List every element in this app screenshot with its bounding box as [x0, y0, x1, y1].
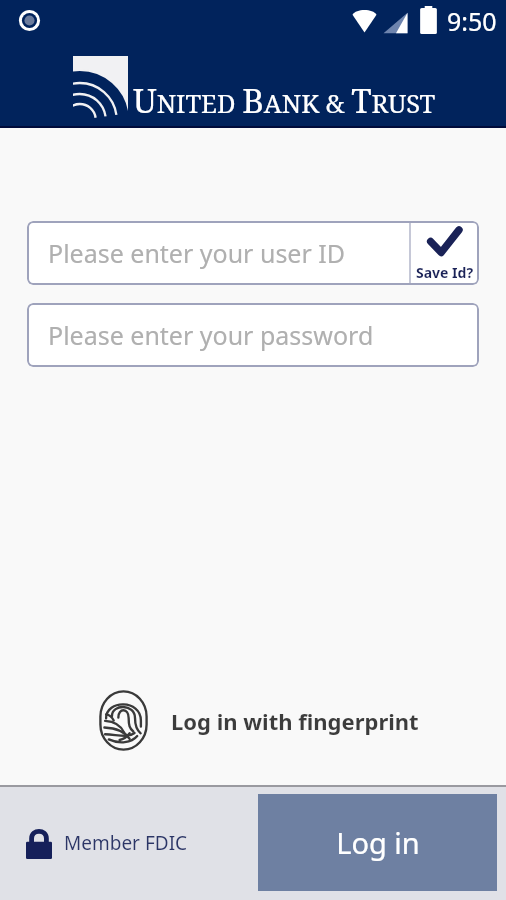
- button[interactable]: Please enter your password: [27, 303, 479, 367]
- staticText: Please enter your user ID: [48, 236, 410, 270]
- staticText: Log in with fingerprint: [171, 706, 419, 736]
- staticText: Please enter your password: [48, 318, 374, 352]
- staticText: UNITED BANK & TRUST: [133, 78, 436, 123]
- button[interactable]: Member FDIC: [26, 827, 188, 859]
- button[interactable]: Save Id: [410, 221, 479, 285]
- staticText: Member FDIC: [64, 830, 188, 856]
- staticText: Log in: [336, 823, 420, 862]
- button[interactable]: Please enter your user ID: [27, 221, 479, 285]
- button[interactable]: Log in with fingerprint: [99, 690, 419, 751]
- button[interactable]: Log in: [258, 794, 497, 891]
- staticText: 9:50: [447, 4, 497, 38]
- staticText: Save Id?: [416, 263, 474, 282]
